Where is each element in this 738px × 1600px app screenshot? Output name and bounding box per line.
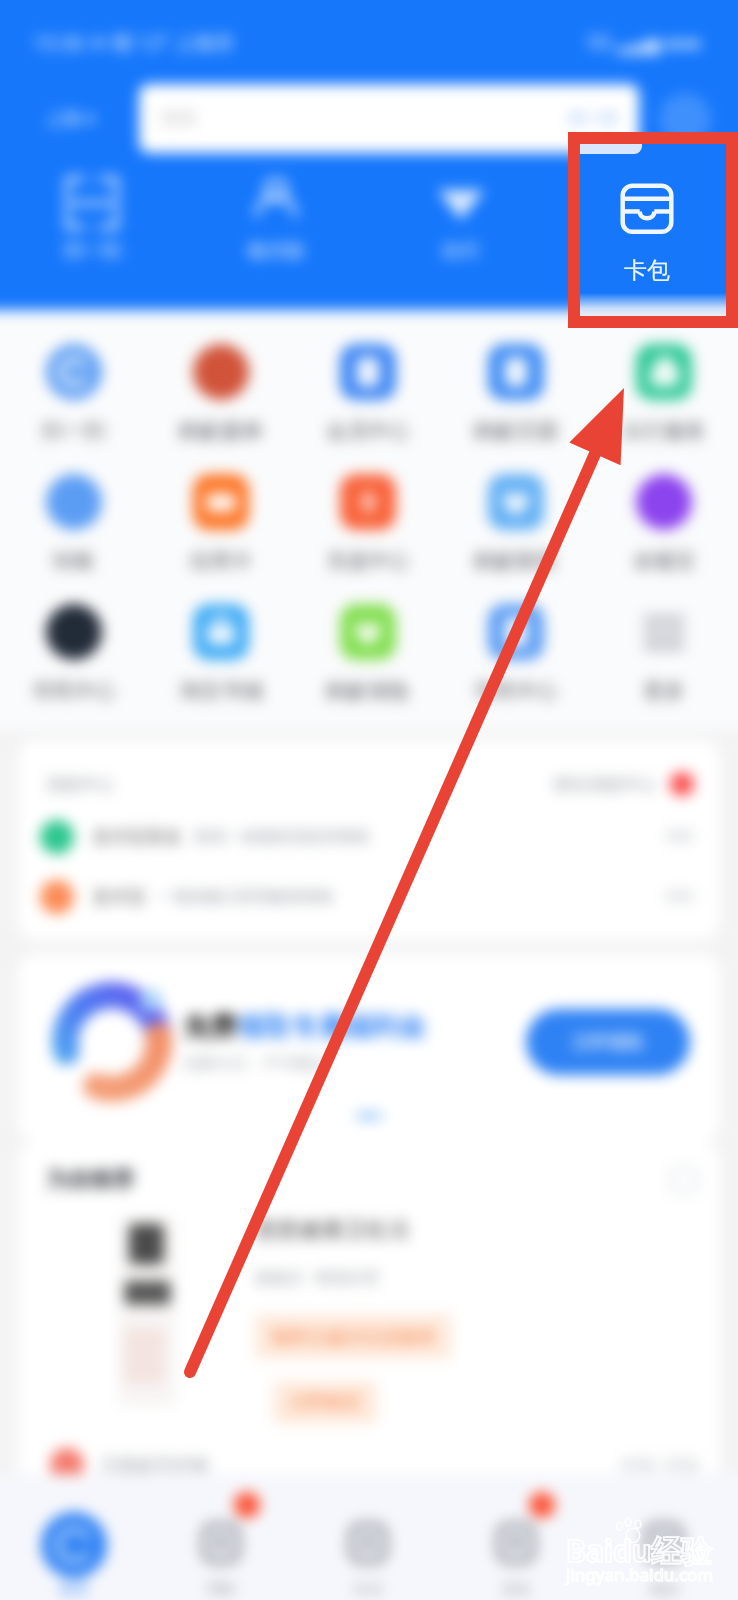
staticText: 蚂蚁庄园 [474, 418, 558, 444]
staticText: 消息中心 [46, 774, 114, 795]
staticText: 支付宝 [92, 886, 146, 909]
button[interactable]: 市民中心 [0, 604, 147, 730]
button[interactable]: 天猫超市好物 [50, 1448, 700, 1482]
staticText: 领券立减20元优惠券 [271, 1324, 436, 1349]
button[interactable]: 卡包 [580, 144, 726, 317]
staticText: 全场二折起 [620, 1455, 700, 1475]
staticText: 出行 [442, 239, 480, 263]
staticText: 信用卡 [189, 548, 252, 574]
staticText: 更多 [643, 678, 685, 704]
staticText: 领取专属福利金 [237, 1010, 426, 1044]
button[interactable]: 立即领取 [526, 1009, 690, 1075]
staticText: 我的 [649, 1580, 679, 1599]
staticText: 转账 [53, 548, 95, 574]
button[interactable]: 卡包 [553, 171, 738, 263]
staticText: 收付款 [248, 239, 305, 263]
staticText: 市民中心 [32, 678, 116, 704]
staticText: 消息 [501, 1580, 531, 1599]
staticText: Baidu经验 [566, 1530, 712, 1571]
button[interactable]: 支付宝安全 [40, 820, 694, 854]
staticText: 为你推荐 [46, 1166, 134, 1194]
staticText: 淘宝书城 [179, 678, 263, 704]
button[interactable]: 出行服务 [590, 344, 738, 474]
button[interactable]: 理财 [147, 1512, 294, 1600]
staticText: 蚂蚁保险 [326, 678, 410, 704]
button[interactable]: Profile [659, 93, 711, 145]
button[interactable]: 上海 ▾ [0, 84, 139, 153]
staticText: 扫一扫 [42, 418, 105, 444]
staticText: jingyan.baidu.com [566, 1563, 714, 1586]
staticText: 免费 [183, 1010, 237, 1044]
button[interactable]: 充值中心 [294, 474, 442, 604]
staticText: 仅限今日，不可错过 [183, 1054, 327, 1074]
staticText: 立即领取 [572, 1031, 644, 1054]
staticText: 前往消息中心 [554, 774, 656, 795]
button[interactable]: 蚂蚁财富 [442, 474, 590, 604]
button[interactable]: 余额宝 [590, 474, 738, 604]
button[interactable]: 首页 [0, 1512, 147, 1600]
button[interactable]: 会员中心 [294, 344, 442, 474]
staticText: 一笔转账已经到账请查收 [158, 887, 334, 907]
staticText: 首页 [59, 1580, 89, 1599]
button[interactable]: 淘宝书城 [147, 604, 294, 730]
staticText: 扫一扫 [569, 109, 617, 129]
button[interactable]: 蚂蚁保险 [294, 604, 442, 730]
staticText: 搜索 [161, 107, 197, 130]
button[interactable]: 蚂蚁庄园 [442, 344, 590, 474]
button[interactable]: 扫一扫 [0, 344, 147, 474]
staticText: 蚂蚁森林 [179, 418, 263, 444]
staticText: 立即购买 [289, 1391, 361, 1414]
staticText: 悠悠健康卫生洁 [255, 1216, 409, 1244]
button[interactable]: 支付宝 [40, 880, 694, 914]
button[interactable]: 市民中心 [442, 604, 590, 730]
button[interactable]: 消息 [442, 1512, 590, 1600]
staticText: 旗舰店 · 精选好货 [255, 1266, 380, 1288]
staticText: 市民中心 [474, 678, 558, 704]
button[interactable]: 我的 [590, 1512, 738, 1600]
staticText: 充值中心 [326, 548, 410, 574]
staticText: 天猫超市好物 [100, 1454, 208, 1477]
button[interactable]: 扫一扫 [0, 171, 184, 263]
button[interactable]: 出行 [368, 171, 553, 263]
staticText: 卡包 [627, 239, 665, 263]
staticText: 出行服务 [622, 418, 706, 444]
staticText: 余额宝 [633, 548, 696, 574]
button[interactable]: 转账 [0, 474, 147, 604]
button[interactable]: 搜索 [139, 84, 639, 153]
staticText: 蚂蚁财富 [474, 548, 558, 574]
staticText: 5G ▂▃▅ ▬▬ [587, 29, 702, 55]
button[interactable]: 收付款 [184, 171, 368, 263]
button[interactable]: 更多 [590, 604, 738, 730]
staticText: 卡包 [624, 256, 670, 285]
staticText: 上海 ▾ [45, 106, 95, 131]
button[interactable]: 生活 [294, 1512, 442, 1600]
staticText: 支付宝安全 [92, 826, 182, 849]
staticText: 15:36 ☀ 晴 12° 上海市 [33, 29, 235, 56]
button[interactable]: 蚂蚁森林 [147, 344, 294, 474]
staticText: 理财 [206, 1580, 236, 1599]
button[interactable]: 信用卡 [147, 474, 294, 604]
staticText: 会员中心 [326, 418, 410, 444]
staticText: 扫一扫 [64, 239, 121, 263]
staticText: 您有一条新的消息待查收 [194, 827, 370, 847]
